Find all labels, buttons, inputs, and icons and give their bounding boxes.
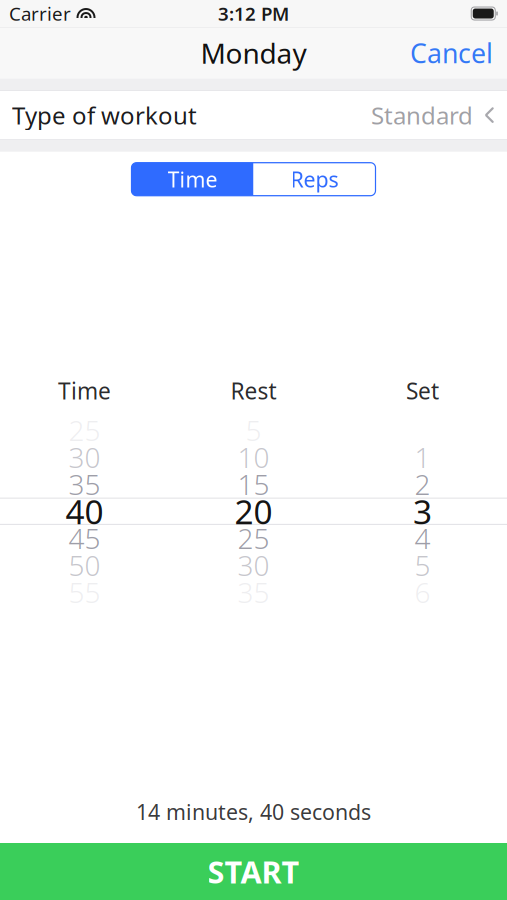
staticText: Carrier (9, 1, 71, 26)
staticText: 50 (68, 547, 100, 584)
staticText: Cancel (410, 35, 493, 71)
staticText: Type of workout (12, 99, 197, 131)
staticText: 3 (413, 489, 432, 533)
staticText: Monday (200, 34, 306, 72)
staticText: 55 (68, 574, 100, 611)
staticText: Time (167, 165, 217, 193)
staticText: 25 (237, 520, 269, 557)
button[interactable]: Reps (253, 163, 375, 196)
staticText: Time (58, 376, 111, 406)
staticText: 1 (414, 439, 430, 476)
staticText: 30 (237, 547, 269, 584)
staticText: 3:12 PM (218, 1, 289, 26)
staticText: Standard (371, 99, 473, 131)
button[interactable]: START (0, 843, 507, 900)
button[interactable]: Type of workout (0, 91, 507, 139)
staticText: Set (406, 376, 439, 406)
staticText: 35 (237, 574, 269, 611)
button[interactable]: Cancel (396, 25, 507, 81)
staticText: 25 (68, 412, 100, 449)
staticText: 5 (414, 547, 430, 584)
staticText: 35 (68, 466, 100, 503)
staticText: 10 (237, 439, 269, 476)
staticText: 6 (414, 574, 430, 611)
staticText: Rest (230, 376, 276, 406)
staticText: 5 (245, 412, 261, 449)
staticText: 14 minutes, 40 seconds (136, 798, 371, 826)
staticText: START (207, 851, 299, 892)
staticText: Reps (290, 165, 338, 193)
button[interactable]: Time (131, 163, 253, 196)
staticText: 2 (414, 466, 430, 503)
staticText: 15 (237, 466, 269, 503)
staticText: 40 (65, 489, 103, 533)
staticText: 45 (68, 520, 100, 557)
staticText: 4 (414, 520, 430, 557)
staticText: 30 (68, 439, 100, 476)
staticText: 20 (234, 489, 272, 533)
